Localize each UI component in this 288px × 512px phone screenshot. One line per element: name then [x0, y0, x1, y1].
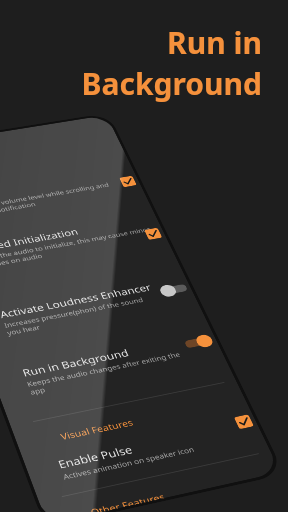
- staticText: Forced Initialization: [0, 225, 80, 254]
- button[interactable]: Enable Pulse: [23, 413, 274, 509]
- staticText: Keeps the audio changes after exiting th…: [25, 349, 186, 396]
- staticText: Run in Background: [20, 346, 131, 379]
- staticText: Force the audio to initialize, this may …: [0, 225, 155, 270]
- staticText: Actives animation on speaker icon: [61, 444, 196, 481]
- staticText: Activate Loudness Enhancer: [0, 281, 153, 320]
- staticText: Background: [81, 63, 262, 104]
- button[interactable]: Volume: [0, 162, 147, 234]
- button[interactable]: Run in Background: [0, 326, 230, 414]
- staticText: Other Features: [88, 490, 165, 512]
- staticText: Increases pressure(phon) of the sound yo…: [3, 295, 148, 337]
- staticText: Run in: [167, 22, 262, 63]
- staticText: Change the volume level while scrolling …: [0, 180, 113, 220]
- staticText: Visual Features: [59, 416, 135, 442]
- button[interactable]: Activate Loudness Enhancer: [0, 271, 202, 353]
- staticText: Enable Pulse: [56, 442, 135, 471]
- button[interactable]: Forced Initialization: [0, 209, 171, 285]
